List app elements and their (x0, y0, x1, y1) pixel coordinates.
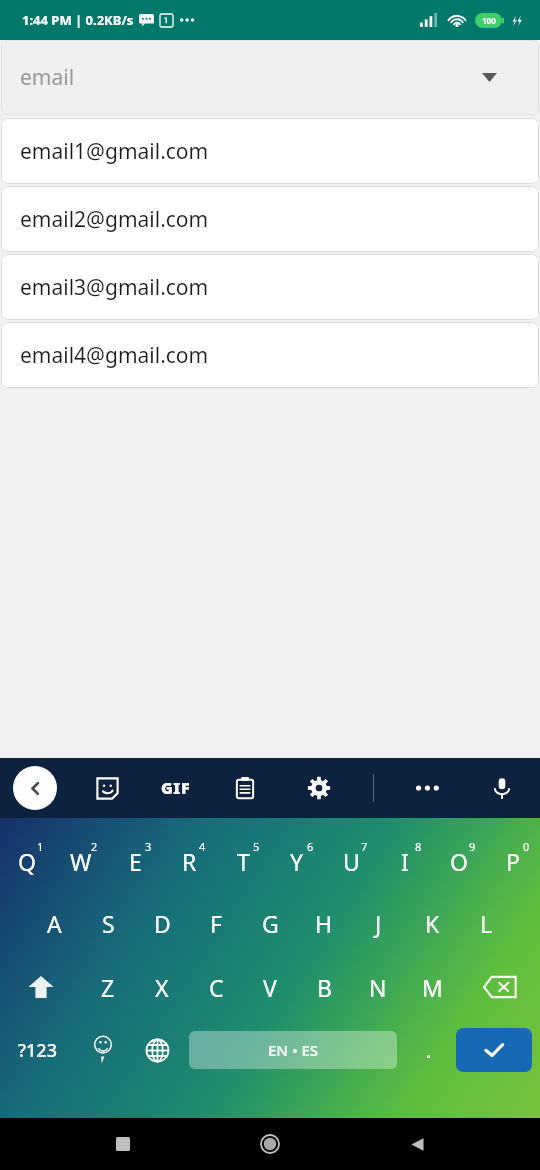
staticText: U (343, 846, 360, 877)
staticText: GIF (161, 777, 191, 799)
button[interactable]: ?123 (0, 1020, 75, 1080)
button[interactable]: Z (81, 958, 135, 1016)
staticText: 5 (253, 839, 260, 854)
button[interactable]: M (405, 958, 459, 1016)
staticText: email (20, 63, 75, 92)
button[interactable]: U (324, 826, 378, 888)
staticText: W (70, 846, 92, 877)
button[interactable]: Backspace (459, 958, 540, 1016)
staticText: 4 (199, 839, 206, 854)
staticText: S (102, 908, 115, 939)
button[interactable]: A (27, 894, 81, 952)
staticText: Z (101, 972, 115, 1003)
button[interactable]: E (108, 826, 162, 888)
staticText: L (480, 908, 493, 939)
staticText: M (422, 972, 443, 1003)
button[interactable]: T (216, 826, 270, 888)
button[interactable]: Back (393, 1120, 441, 1168)
button[interactable]: EN • ES (189, 1031, 397, 1069)
staticText: I (401, 846, 409, 877)
staticText: X (155, 972, 169, 1003)
staticText: 3 (145, 839, 152, 854)
button[interactable]: email4@gmail.com (1, 322, 539, 388)
button[interactable]: email1@gmail.com (1, 118, 539, 184)
button[interactable]: Recents (99, 1120, 147, 1168)
staticText: B (317, 972, 332, 1003)
button[interactable]: Voice input (482, 768, 522, 808)
staticText: 100 (482, 15, 496, 26)
button[interactable]: H (297, 894, 351, 952)
button[interactable]: GIF (161, 777, 191, 799)
button[interactable]: Change language (130, 1020, 184, 1080)
staticText: . (426, 1037, 432, 1064)
button[interactable]: J (351, 894, 405, 952)
button[interactable]: R (162, 826, 216, 888)
staticText: 8 (415, 839, 422, 854)
button[interactable]: G (243, 894, 297, 952)
staticText: ?123 (18, 1038, 57, 1063)
staticText: E (129, 846, 142, 877)
button[interactable]: Shift (0, 958, 81, 1016)
staticText: email1@gmail.com (20, 137, 209, 166)
button[interactable]: Q (0, 826, 54, 888)
staticText: 9 (469, 839, 476, 854)
staticText: C (209, 972, 224, 1003)
staticText: EN • ES (268, 1040, 319, 1060)
staticText: 7 (361, 839, 368, 854)
button[interactable]: O (432, 826, 486, 888)
button[interactable]: Stickers (87, 768, 127, 808)
staticText: 1 (37, 839, 44, 854)
button[interactable]: Enter (456, 1028, 532, 1072)
button[interactable]: Back (13, 766, 57, 810)
button[interactable]: D (135, 894, 189, 952)
staticText: H (315, 908, 333, 939)
staticText: Y (290, 846, 304, 877)
button[interactable]: C (189, 958, 243, 1016)
staticText: P (506, 846, 520, 877)
button[interactable]: . (402, 1020, 456, 1080)
staticText: 2 (91, 839, 98, 854)
button[interactable]: Emoji (75, 1020, 130, 1080)
button[interactable]: Settings (299, 768, 339, 808)
staticText: email3@gmail.com (20, 273, 209, 302)
button[interactable]: email3@gmail.com (1, 254, 539, 320)
button[interactable]: B (297, 958, 351, 1016)
button[interactable]: More options (408, 768, 448, 808)
button[interactable]: N (351, 958, 405, 1016)
button[interactable]: V (243, 958, 297, 1016)
staticText: 0 (523, 839, 530, 854)
staticText: F (210, 908, 222, 939)
staticText: R (182, 846, 197, 877)
staticText: V (263, 972, 277, 1003)
staticText: A (47, 908, 62, 939)
button[interactable]: Home (246, 1120, 294, 1168)
staticText: 1:44 PM | 0.2KB/s (22, 11, 134, 29)
staticText: Q (18, 846, 36, 877)
button[interactable]: P (486, 826, 540, 888)
staticText: J (375, 908, 382, 939)
button[interactable]: email2@gmail.com (1, 186, 539, 252)
button[interactable]: email (1, 40, 539, 115)
button[interactable]: F (189, 894, 243, 952)
button[interactable]: Y (270, 826, 324, 888)
staticText: T (237, 846, 250, 877)
button[interactable]: I (378, 826, 432, 888)
staticText: O (450, 846, 468, 877)
staticText: 6 (307, 839, 314, 854)
button[interactable]: L (459, 894, 513, 952)
staticText: D (154, 908, 171, 939)
staticText: G (262, 908, 279, 939)
staticText: email2@gmail.com (20, 205, 209, 234)
button[interactable]: X (135, 958, 189, 1016)
button[interactable]: S (81, 894, 135, 952)
button[interactable]: K (405, 894, 459, 952)
button[interactable]: Clipboard (225, 768, 265, 808)
staticText: K (425, 908, 440, 939)
staticText: email4@gmail.com (20, 341, 209, 370)
staticText: N (369, 972, 387, 1003)
button[interactable]: W (54, 826, 108, 888)
